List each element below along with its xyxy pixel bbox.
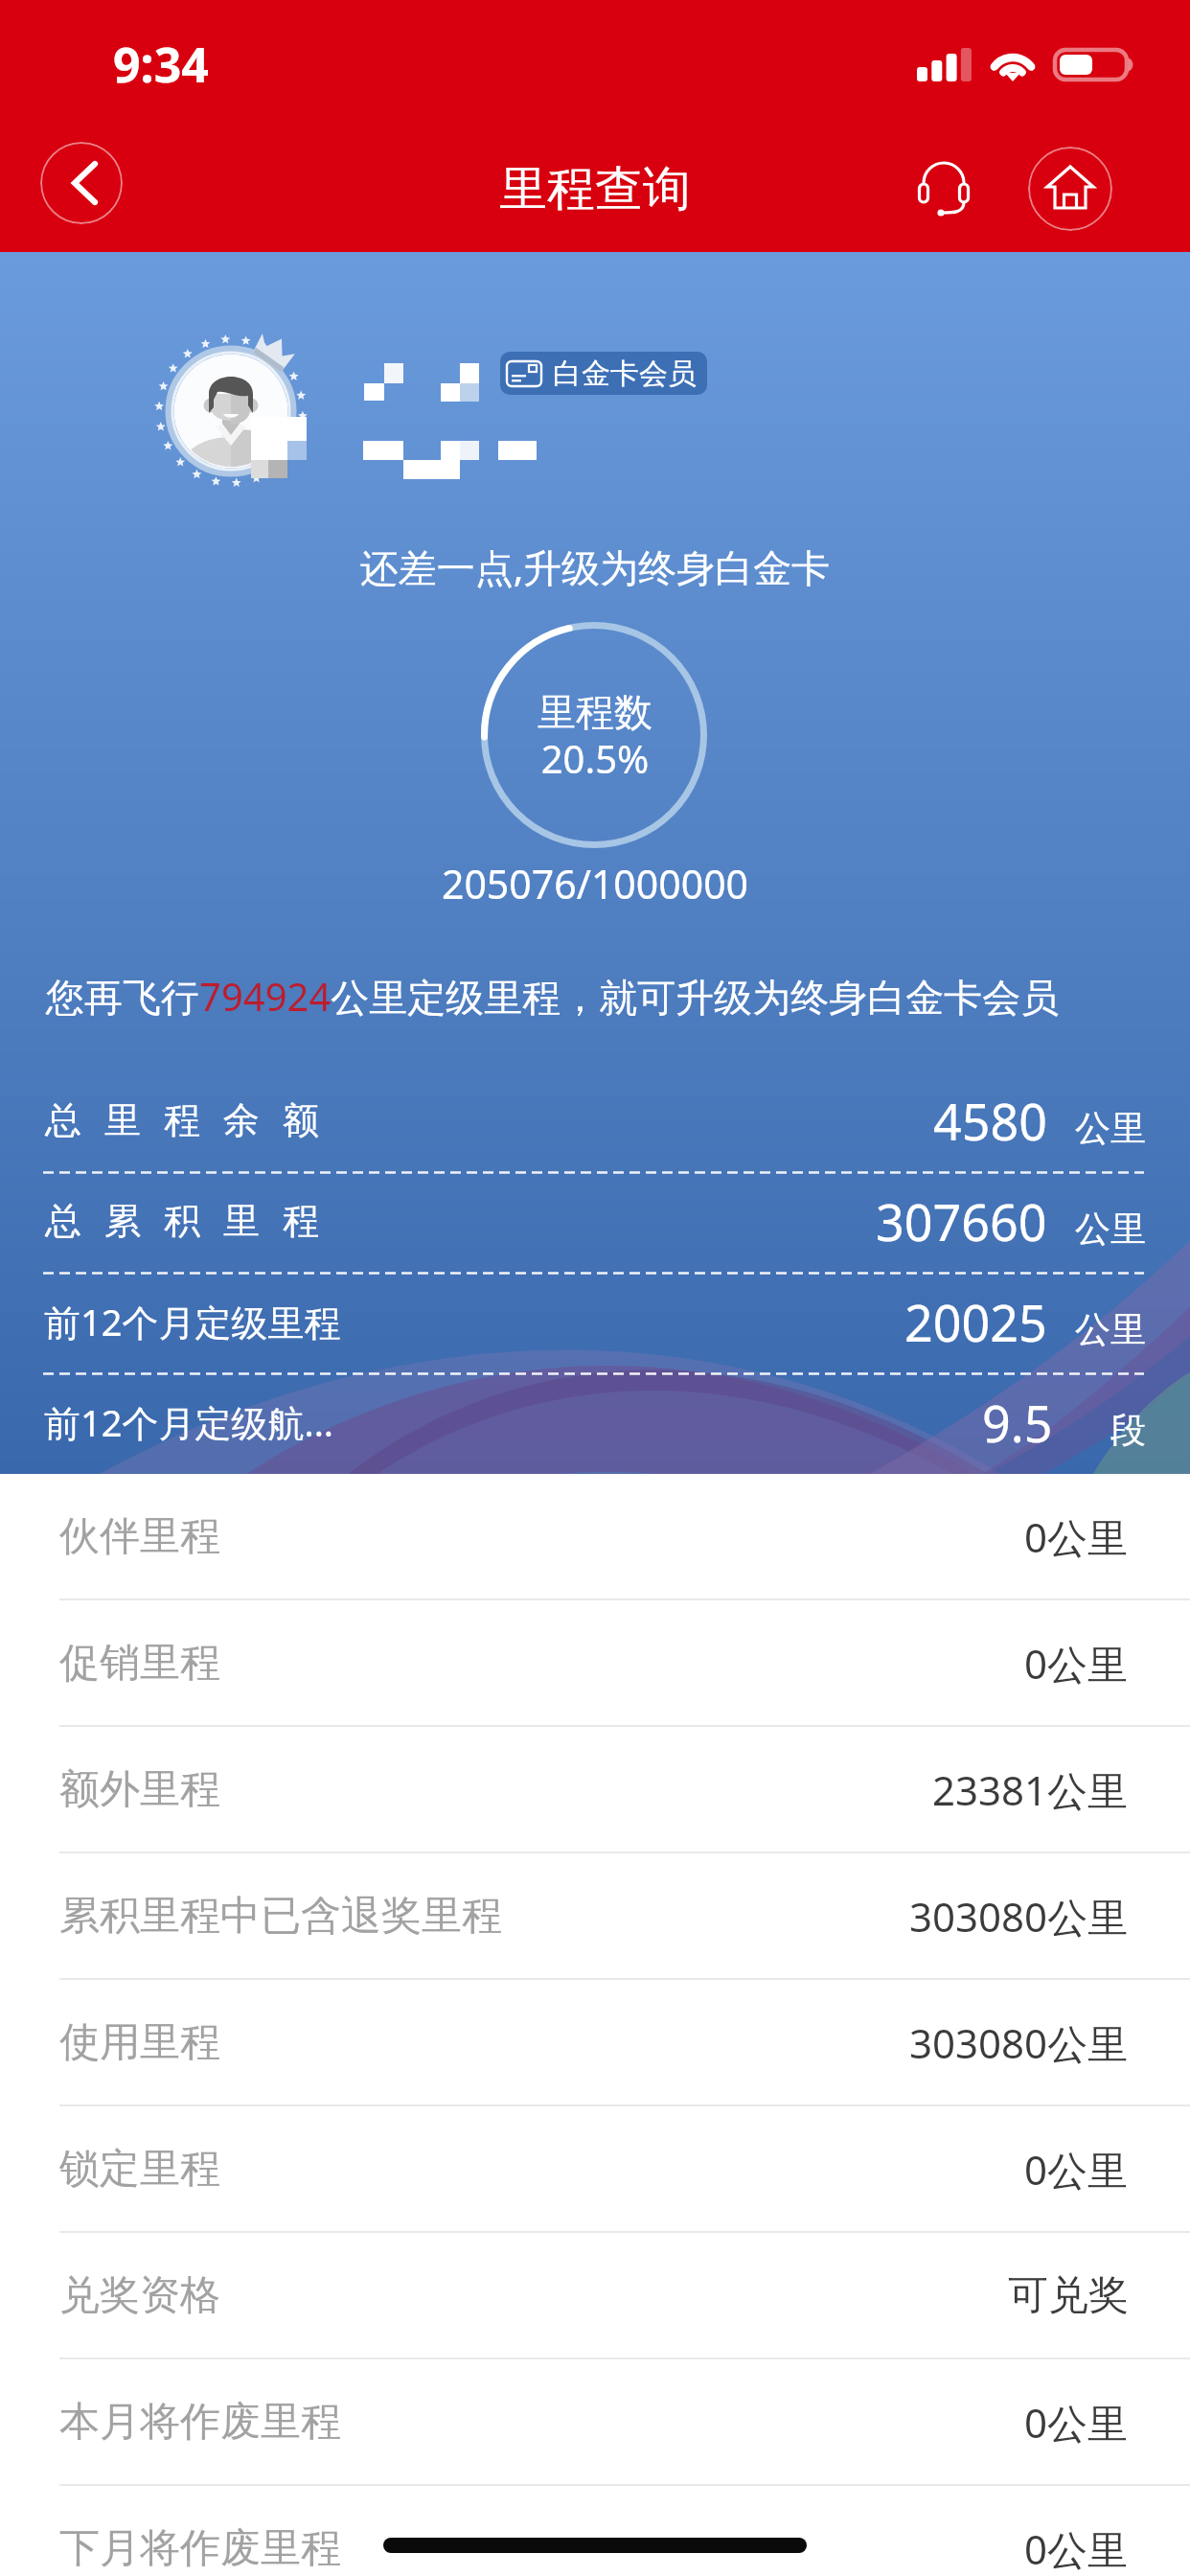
button[interactable]: 下月将作废里程: [0, 2486, 1190, 2576]
staticText: 公里: [1075, 1307, 1146, 1352]
staticText: 公里: [1075, 1106, 1146, 1151]
staticText: 20.5%: [0, 732, 1190, 784]
staticText: 里程数: [0, 688, 1190, 736]
button[interactable]: 伙伴里程: [0, 1474, 1190, 1598]
staticText: 还差一点,升级为终身白金卡: [0, 540, 1190, 593]
staticText: 兑奖资格: [59, 2270, 220, 2321]
staticText: 23381公里: [932, 1762, 1129, 1817]
staticText: 本月将作废里程: [59, 2397, 341, 2448]
staticText: 里程查询: [0, 159, 1190, 219]
staticText: 伙伴里程: [59, 1511, 220, 1562]
button[interactable]: 额外里程: [0, 1727, 1190, 1851]
button[interactable]: Home: [1028, 147, 1112, 231]
staticText: 9.5: [982, 1389, 1053, 1457]
button[interactable]: 前12个月定级里程: [0, 1279, 1190, 1364]
staticText: 307660: [876, 1187, 1047, 1255]
button[interactable]: 白金卡会员: [500, 352, 707, 395]
staticText: 白金卡会员: [553, 356, 697, 392]
staticText: 公里: [1075, 1207, 1146, 1252]
staticText: 前12个月定级里程: [44, 1297, 341, 1346]
button[interactable]: 总累积里程: [0, 1179, 1190, 1263]
staticText: 9:34: [113, 32, 209, 97]
staticText: 您再飞行794924公里定级里程，就可升级为终身白金卡会员: [46, 970, 1060, 1023]
staticText: 促销里程: [59, 1638, 220, 1689]
staticText: 0公里: [1024, 2395, 1129, 2449]
staticText: 4580: [933, 1087, 1047, 1155]
staticText: 可兑奖: [1008, 2270, 1129, 2321]
button[interactable]: 累积里程中已含退奖里程: [0, 1853, 1190, 1978]
staticText: 累积里程中已含退奖里程: [59, 1891, 502, 1942]
staticText: 20025: [904, 1288, 1047, 1356]
staticText: 0公里: [1024, 2521, 1129, 2576]
staticText: 额外里程: [59, 1764, 220, 1815]
staticText: 总累积里程: [34, 1198, 331, 1244]
button[interactable]: 本月将作废里程: [0, 2359, 1190, 2484]
staticText: 205076/1000000: [0, 857, 1190, 910]
staticText: 锁定里程: [59, 2144, 220, 2195]
button[interactable]: 兑奖资格: [0, 2233, 1190, 2357]
button[interactable]: 使用里程: [0, 1980, 1190, 2104]
staticText: 0公里: [1024, 1509, 1129, 1564]
staticText: 段: [1110, 1408, 1146, 1453]
button[interactable]: 总里程余额: [0, 1078, 1190, 1162]
staticText: 使用里程: [59, 2017, 220, 2068]
staticText: 303080公里: [909, 2015, 1129, 2070]
staticText: 前12个月定级航...: [44, 1397, 334, 1447]
staticText: 下月将作废里程: [59, 2523, 341, 2574]
button[interactable]: Customer service: [903, 146, 985, 228]
staticText: 303080公里: [909, 1889, 1129, 1943]
staticText: 总里程余额: [34, 1097, 331, 1143]
button[interactable]: Back: [40, 142, 123, 224]
button[interactable]: 促销里程: [0, 1600, 1190, 1725]
button[interactable]: 锁定里程: [0, 2106, 1190, 2231]
staticText: 0公里: [1024, 1636, 1129, 1690]
staticText: 0公里: [1024, 2142, 1129, 2196]
button[interactable]: 前12个月定级航...: [0, 1380, 1190, 1464]
